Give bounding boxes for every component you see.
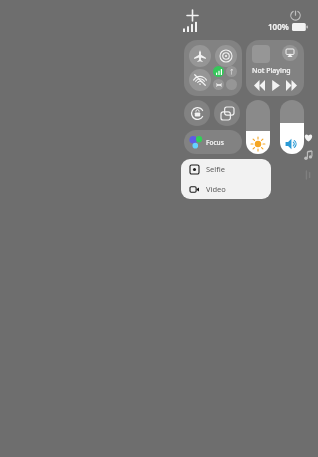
button[interactable]: Add: [183, 6, 201, 24]
button[interactable]: AirPlay: [246, 40, 304, 96]
button[interactable]: Play: [268, 78, 282, 92]
button[interactable]: Rotation Lock: [184, 100, 210, 126]
staticText: Focus: [206, 138, 224, 147]
staticText: ᛏ: [230, 69, 234, 75]
button[interactable]: Screen Mirroring: [214, 100, 240, 126]
staticText: Video: [206, 184, 226, 194]
button[interactable]: Satellite: [226, 79, 237, 90]
button[interactable]: Bluetooth: [213, 79, 224, 90]
button[interactable]: Music Recognition: [302, 149, 314, 161]
button[interactable]: Power: [286, 6, 304, 24]
button[interactable]: Personal Hotspot: [226, 66, 237, 77]
button[interactable]: Volume: [280, 100, 304, 154]
button[interactable]: Wi-Fi: [189, 69, 211, 91]
button[interactable]: Cellular Data: [213, 66, 224, 77]
button[interactable]: Focus: [184, 130, 242, 154]
button[interactable]: Selfie: [181, 159, 271, 179]
button[interactable]: Next: [284, 78, 298, 92]
button[interactable]: Video: [181, 179, 271, 199]
button[interactable]: Previous: [252, 78, 266, 92]
staticText: Not Playing: [252, 66, 291, 76]
button[interactable]: Brightness: [246, 100, 270, 154]
button[interactable]: Airplane Mode: [189, 45, 211, 67]
button[interactable]: AirDrop: [215, 45, 237, 67]
staticText: 100%: [268, 21, 289, 32]
staticText: Selfie: [206, 164, 226, 174]
button[interactable]: Hearing: [302, 169, 314, 181]
button[interactable]: AirPlay: [282, 45, 298, 61]
button[interactable]: Health: [302, 131, 314, 143]
